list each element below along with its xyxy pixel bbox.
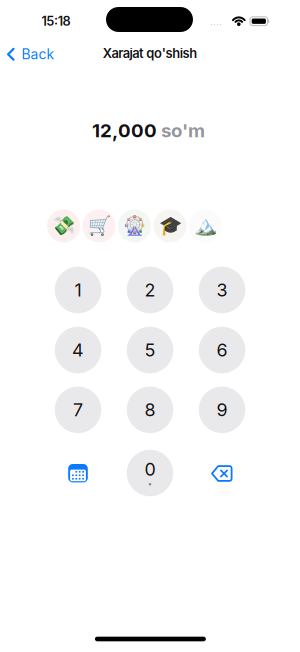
staticText: 6	[216, 339, 227, 361]
button[interactable]: Education	[153, 209, 186, 242]
button[interactable]: 0	[127, 450, 173, 496]
button[interactable]: 2	[127, 267, 173, 313]
button[interactable]: 6	[199, 327, 245, 373]
staticText: 3	[216, 279, 227, 301]
button[interactable]: Shopping	[82, 209, 115, 242]
button[interactable]: 9	[199, 387, 245, 433]
staticText: 4	[72, 339, 84, 361]
staticText: 🏔️	[194, 215, 217, 237]
staticText: 7	[73, 399, 83, 421]
staticText: 0	[144, 458, 155, 480]
staticText: 5	[144, 339, 155, 361]
button[interactable]: Money	[47, 209, 80, 242]
staticText: 15:18	[42, 13, 70, 29]
staticText: 🎓	[158, 215, 181, 237]
button[interactable]: 7	[55, 387, 101, 433]
button[interactable]: Choose date	[68, 464, 88, 484]
staticText: 8	[144, 399, 155, 421]
staticText: Back	[21, 46, 54, 63]
staticText: 12,000	[92, 119, 157, 142]
staticText: 💸	[52, 215, 75, 237]
button[interactable]: 8	[127, 387, 173, 433]
button[interactable]: Entertainment	[118, 209, 151, 242]
staticText: 1	[74, 279, 81, 301]
staticText: so'm	[157, 119, 205, 142]
button[interactable]: Delete	[211, 465, 233, 482]
button[interactable]: 5	[127, 327, 173, 373]
button[interactable]: 4	[55, 327, 101, 373]
button[interactable]: Travel	[189, 209, 222, 242]
staticText: 🎡	[123, 215, 146, 237]
staticText: Xarajat qo'shish	[103, 45, 197, 61]
button[interactable]: 1	[55, 267, 101, 313]
button[interactable]: 3	[199, 267, 245, 313]
button[interactable]: Back	[6, 43, 54, 65]
staticText: 9	[216, 399, 227, 421]
staticText: 2	[144, 279, 155, 301]
staticText: 🛒	[87, 215, 110, 237]
